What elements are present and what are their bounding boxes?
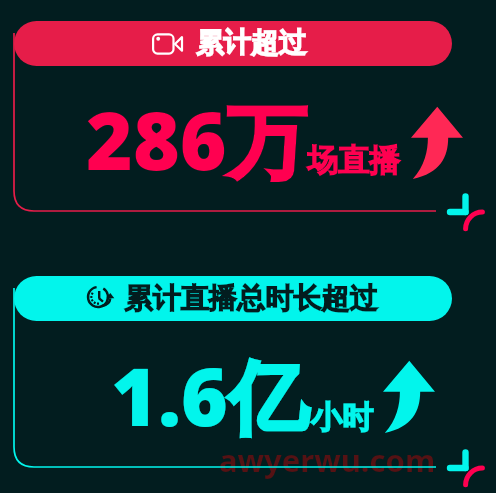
staticText: 1.6亿 [111, 340, 308, 449]
staticText: 286万 [86, 84, 307, 193]
button[interactable]: 累计直播总时长超过 [14, 276, 452, 321]
staticText: 场直播 [307, 141, 400, 180]
staticText: 累计直播总时长超过 [124, 281, 378, 317]
staticText: 小时 [311, 398, 373, 437]
staticText: 累计超过 [196, 26, 306, 61]
staticText: awyerwu.com [219, 439, 436, 481]
button[interactable]: 累计超过 [14, 21, 452, 66]
